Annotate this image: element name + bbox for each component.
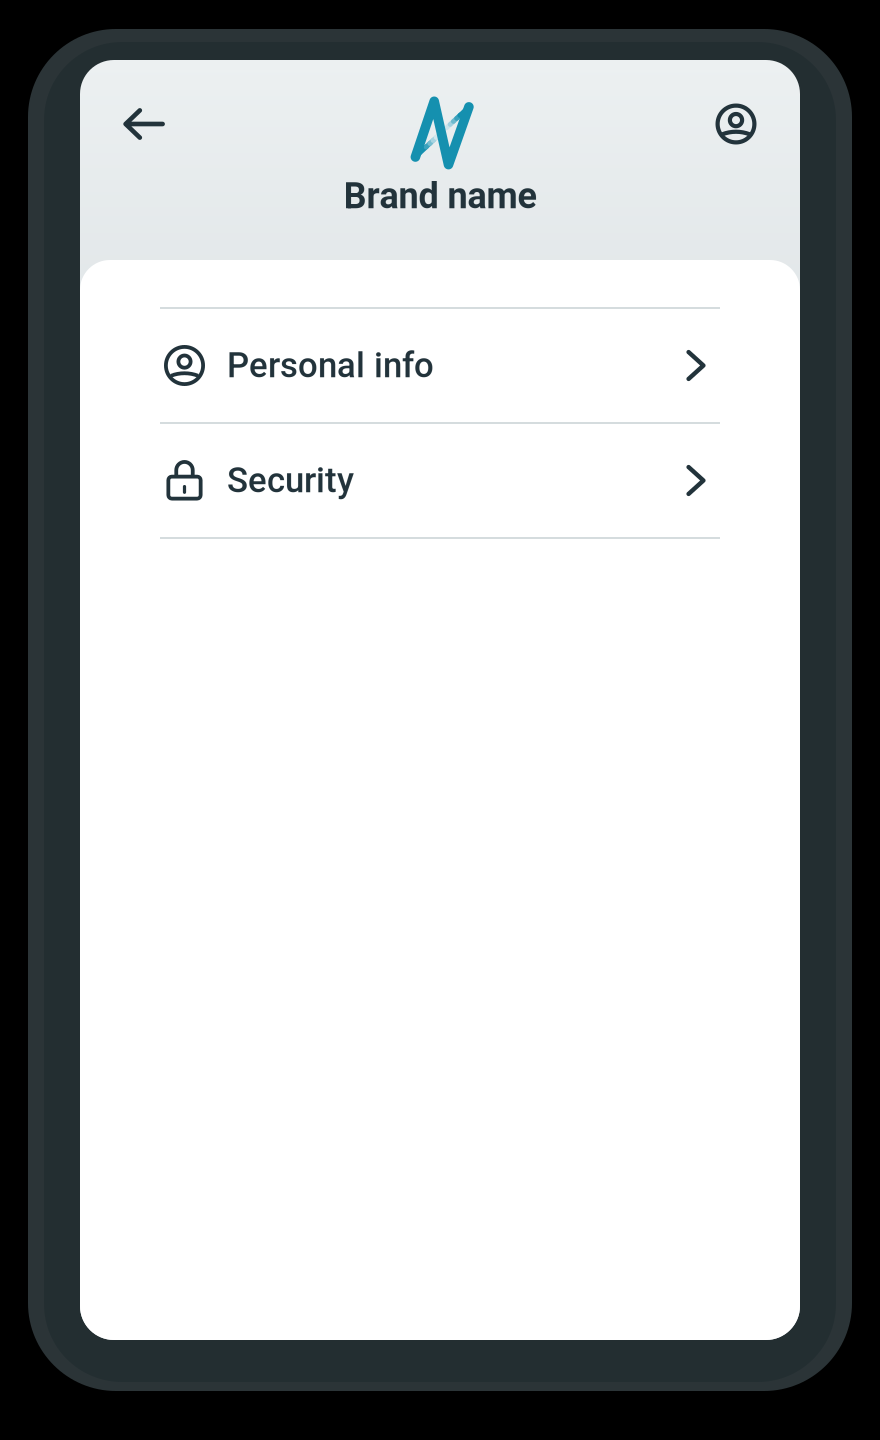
button[interactable]: Personal info <box>160 309 720 422</box>
staticText: Brand name <box>343 175 536 217</box>
staticText: Personal info <box>227 345 434 386</box>
button[interactable]: Back <box>109 89 179 159</box>
button[interactable]: Security <box>160 424 720 537</box>
staticText: Security <box>227 460 354 501</box>
button[interactable]: Account <box>701 89 771 159</box>
